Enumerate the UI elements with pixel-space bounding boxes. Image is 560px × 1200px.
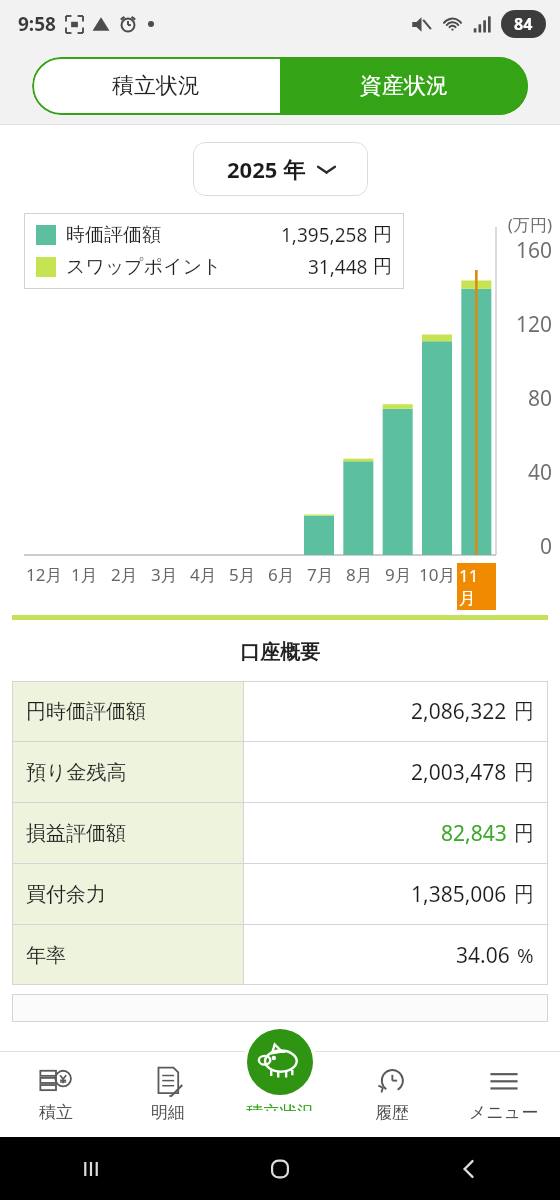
staticText: 0 (498, 532, 552, 561)
staticText: 3月 (151, 563, 178, 586)
staticText: 5月 (229, 563, 256, 586)
staticText: 円 (514, 882, 534, 907)
staticText: 80 (498, 384, 552, 413)
staticText: 明細 (151, 1102, 185, 1123)
button[interactable]: 積立状況 (32, 57, 280, 115)
staticText: 2月 (111, 563, 138, 586)
staticText: 11月 (459, 564, 494, 609)
staticText: 口座概要 (0, 640, 560, 665)
staticText: 積立状況 (112, 72, 200, 100)
staticText: 2,086,322 (411, 697, 507, 726)
button[interactable]: 買付余力 (12, 864, 548, 924)
staticText: 預り金残高 (26, 760, 127, 785)
staticText: 積立 (39, 1102, 73, 1123)
button[interactable]: 履歴 (336, 1051, 448, 1137)
staticText: 円 (373, 255, 392, 279)
staticText: 10月 (419, 563, 456, 586)
staticText: 資産状況 (360, 72, 448, 100)
button[interactable]: 円時価評価額 (12, 681, 548, 741)
staticText: 9:58 (18, 11, 56, 37)
staticText: 1,395,258 (281, 222, 368, 248)
staticText: 積立状況 (246, 1102, 314, 1111)
staticText: 34.06 (456, 941, 510, 970)
staticText: 120 (498, 310, 552, 339)
staticText: % (517, 942, 534, 969)
staticText: (万円) (498, 213, 552, 236)
staticText: 84 (514, 13, 533, 35)
button[interactable]: メニュー (448, 1051, 560, 1137)
staticText: 損益評価額 (26, 821, 126, 846)
button[interactable]: 預り金残高 (12, 742, 548, 802)
button[interactable]: Back (448, 1148, 490, 1190)
staticText: 2025 年 (227, 154, 306, 184)
staticText: 6月 (268, 563, 295, 586)
button[interactable]: 資産状況 (280, 57, 528, 115)
staticText: 12月 (26, 563, 63, 586)
staticText: 買付余力 (26, 882, 106, 907)
staticText: 4月 (190, 563, 217, 586)
staticText: 1月 (71, 563, 98, 586)
staticText: 円時価評価額 (26, 699, 146, 724)
staticText: 履歴 (375, 1102, 409, 1123)
staticText: メニュー (469, 1102, 539, 1123)
staticText: 円 (514, 821, 534, 846)
staticText: 40 (498, 458, 552, 487)
staticText: 2,003,478 (411, 758, 507, 787)
staticText: 円 (514, 760, 534, 785)
staticText: 年率 (26, 943, 66, 968)
button[interactable]: 年率 (12, 925, 548, 985)
staticText: 31,448 (308, 254, 368, 280)
staticText: 82,843 (441, 819, 507, 848)
button[interactable]: 積立 (0, 1051, 112, 1137)
staticText: 160 (498, 236, 552, 265)
staticText: 9月 (385, 563, 412, 586)
staticText: 1,385,006 (411, 880, 507, 909)
staticText: 円 (514, 699, 534, 724)
button[interactable]: Home (259, 1148, 301, 1190)
button[interactable]: 損益評価額 (12, 803, 548, 863)
staticText: スワップポイント (66, 255, 222, 279)
staticText: 時価評価額 (66, 223, 161, 247)
button[interactable]: 2025 年 (193, 142, 368, 196)
staticText: 8月 (346, 563, 373, 586)
button[interactable]: 明細 (112, 1051, 224, 1137)
button[interactable]: Recents (70, 1148, 112, 1190)
staticText: 円 (373, 223, 392, 247)
staticText: 7月 (307, 563, 334, 586)
button[interactable]: 積立状況 (221, 1025, 339, 1111)
